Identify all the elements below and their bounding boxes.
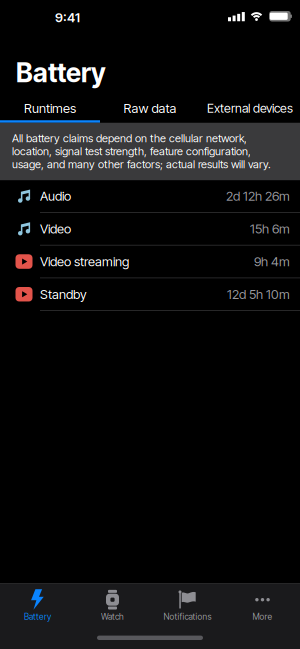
button[interactable]: External devices <box>200 96 300 120</box>
staticText: Battery <box>16 57 106 88</box>
button[interactable]: Runtimes <box>0 96 100 120</box>
staticText: 12d 5h 10m <box>227 287 290 302</box>
staticText: All battery claims depend on the cellula… <box>12 132 271 171</box>
button[interactable]: Video streaming <box>0 246 300 278</box>
staticText: Video streaming <box>40 254 129 269</box>
button[interactable]: Standby <box>0 278 300 311</box>
button[interactable]: Raw data <box>100 96 200 120</box>
button[interactable]: Notifications <box>150 590 225 622</box>
staticText: More <box>252 612 272 622</box>
button[interactable]: Audio <box>0 180 300 213</box>
staticText: Audio <box>40 188 71 204</box>
button[interactable]: Watch <box>75 590 150 622</box>
button[interactable]: Battery <box>0 590 75 622</box>
staticText: 9h 4m <box>254 254 290 269</box>
button[interactable]: More <box>225 590 300 622</box>
staticText: Standby <box>40 287 87 302</box>
staticText: 9:41 <box>55 10 80 25</box>
button[interactable]: Video <box>0 213 300 246</box>
staticText: Video <box>40 221 71 236</box>
staticText: Battery <box>24 612 51 622</box>
staticText: Notifications <box>163 612 211 622</box>
staticText: Watch <box>101 612 124 622</box>
staticText: Raw data <box>123 101 176 116</box>
staticText: 15h 6m <box>250 221 290 236</box>
staticText: 2d 12h 26m <box>226 188 290 204</box>
staticText: Runtimes <box>24 101 76 116</box>
staticText: External devices <box>207 101 293 116</box>
